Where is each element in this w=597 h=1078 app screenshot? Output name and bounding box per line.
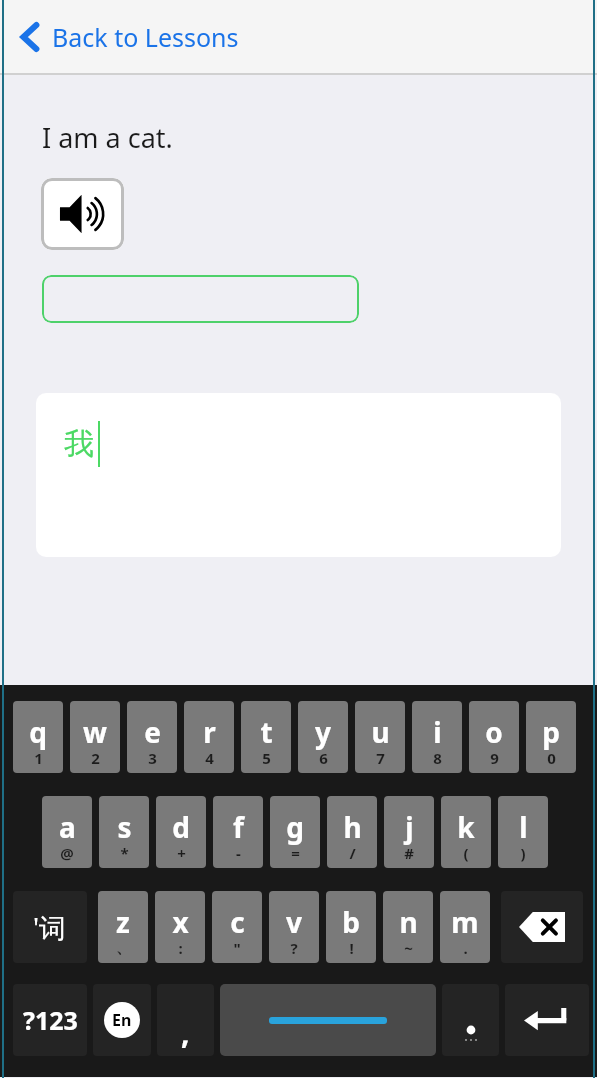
staticText: " — [233, 938, 241, 958]
staticText: * — [120, 843, 129, 863]
button[interactable]: a — [42, 796, 92, 868]
staticText: 5 — [262, 748, 271, 768]
button[interactable]: l — [498, 796, 548, 868]
button[interactable]: s — [99, 796, 149, 868]
staticText: 8 — [433, 748, 442, 768]
staticText: b — [342, 903, 360, 941]
staticText: w — [83, 713, 107, 751]
staticText: z — [116, 903, 130, 941]
staticText: 2 — [91, 748, 100, 768]
staticText: - — [236, 843, 241, 863]
button[interactable]: Back to Lessons — [14, 14, 251, 60]
staticText: 1 — [34, 748, 43, 768]
staticText: ( — [463, 843, 469, 863]
staticText: l — [519, 808, 528, 846]
staticText: # — [404, 843, 414, 863]
staticText: '词 — [33, 909, 67, 946]
staticText: 、 — [116, 939, 131, 958]
staticText: 6 — [319, 748, 328, 768]
button[interactable]: c — [212, 891, 262, 963]
staticText: ~ — [404, 938, 413, 958]
button[interactable] — [42, 275, 359, 323]
staticText: f — [233, 808, 244, 846]
staticText: y — [315, 713, 331, 751]
staticText: s — [117, 808, 132, 846]
staticText: g — [286, 808, 304, 846]
staticText: u — [371, 713, 390, 751]
staticText: ) — [520, 843, 526, 863]
staticText: 4 — [205, 748, 214, 768]
staticText: r — [203, 713, 216, 751]
button[interactable]: e — [127, 701, 177, 773]
staticText: h — [343, 808, 362, 846]
button[interactable]: h — [327, 796, 377, 868]
staticText: e — [144, 713, 161, 751]
staticText: 我 — [64, 425, 94, 463]
button[interactable]: i — [412, 701, 462, 773]
button[interactable]: Backspace — [501, 891, 583, 963]
button[interactable]: n — [383, 891, 433, 963]
button[interactable]: g — [270, 796, 320, 868]
staticText: v — [286, 903, 302, 941]
staticText: 7 — [376, 748, 385, 768]
staticText: ? — [290, 938, 298, 958]
staticText: a — [59, 808, 76, 846]
staticText: c — [230, 903, 245, 941]
staticText: d — [172, 808, 190, 846]
staticText: 3 — [148, 748, 157, 768]
staticText: ! — [349, 938, 354, 958]
button[interactable]: d — [156, 796, 206, 868]
button[interactable]: v — [269, 891, 319, 963]
staticText: I am a cat. — [42, 119, 173, 156]
staticText: = — [291, 843, 300, 863]
staticText: / — [349, 843, 356, 863]
button[interactable]: '词 — [13, 891, 87, 963]
button[interactable]: , — [157, 984, 214, 1056]
staticText: En — [112, 1009, 132, 1031]
staticText: i — [433, 713, 442, 751]
button[interactable]: q — [13, 701, 63, 773]
staticText: o — [485, 713, 503, 751]
button[interactable]: Enter — [505, 984, 589, 1056]
staticText: . — [463, 938, 468, 958]
staticText: p — [542, 713, 560, 751]
button[interactable]: k — [441, 796, 491, 868]
button[interactable]: Space — [220, 984, 436, 1056]
button[interactable]: Switch language — [93, 984, 151, 1056]
button[interactable]: j — [384, 796, 434, 868]
button[interactable]: 我 — [36, 393, 561, 557]
staticText: x — [172, 903, 189, 941]
staticText: k — [457, 808, 475, 846]
button[interactable]: u — [355, 701, 405, 773]
button[interactable]: p — [526, 701, 576, 773]
button[interactable]: w — [70, 701, 120, 773]
button[interactable]: o — [469, 701, 519, 773]
button[interactable]: z — [98, 891, 148, 963]
staticText: 0 — [547, 748, 556, 768]
button[interactable]: b — [326, 891, 376, 963]
staticText: @ — [60, 843, 74, 863]
staticText: n — [399, 903, 418, 941]
staticText: + — [177, 843, 186, 863]
staticText: t — [260, 713, 273, 751]
button[interactable]: x — [155, 891, 205, 963]
button[interactable]: m — [440, 891, 490, 963]
button[interactable]: t — [241, 701, 291, 773]
staticText: , — [181, 1012, 190, 1053]
button[interactable]: Settings — [442, 984, 499, 1056]
button[interactable]: Play audio — [41, 178, 124, 250]
button[interactable]: ?123 — [13, 984, 87, 1056]
staticText: ?123 — [23, 1003, 78, 1037]
staticText: 9 — [490, 748, 499, 768]
button[interactable]: f — [213, 796, 263, 868]
button[interactable]: y — [298, 701, 348, 773]
staticText: : — [178, 938, 183, 958]
button[interactable]: r — [184, 701, 234, 773]
staticText: Back to Lessons — [52, 20, 239, 54]
staticText: j — [405, 808, 414, 846]
staticText: q — [29, 713, 47, 751]
staticText: m — [451, 903, 479, 941]
